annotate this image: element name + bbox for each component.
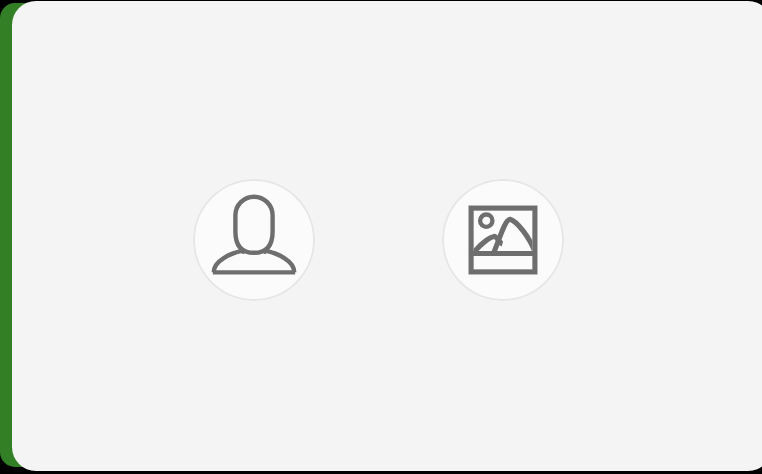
button[interactable]: Profile picture bbox=[193, 179, 315, 301]
button[interactable]: Add photo bbox=[442, 179, 564, 301]
